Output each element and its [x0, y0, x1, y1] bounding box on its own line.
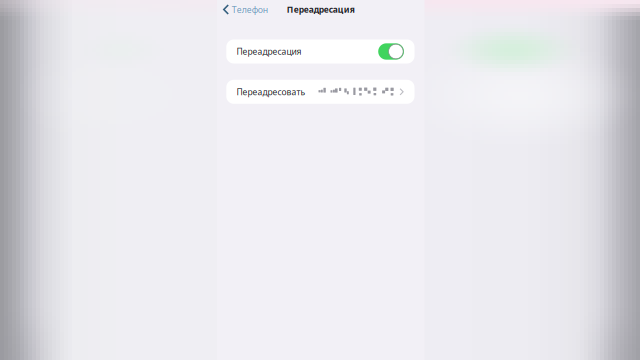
staticText: Переадресация — [236, 46, 301, 57]
button[interactable]: Переадресация — [226, 39, 414, 63]
button[interactable]: Переадресовать — [226, 80, 414, 104]
staticText: Переадресация — [287, 4, 355, 15]
staticText: Переадресовать — [236, 86, 305, 98]
button[interactable]: Телефон — [217, 0, 268, 18]
staticText: Телефон — [232, 3, 268, 15]
